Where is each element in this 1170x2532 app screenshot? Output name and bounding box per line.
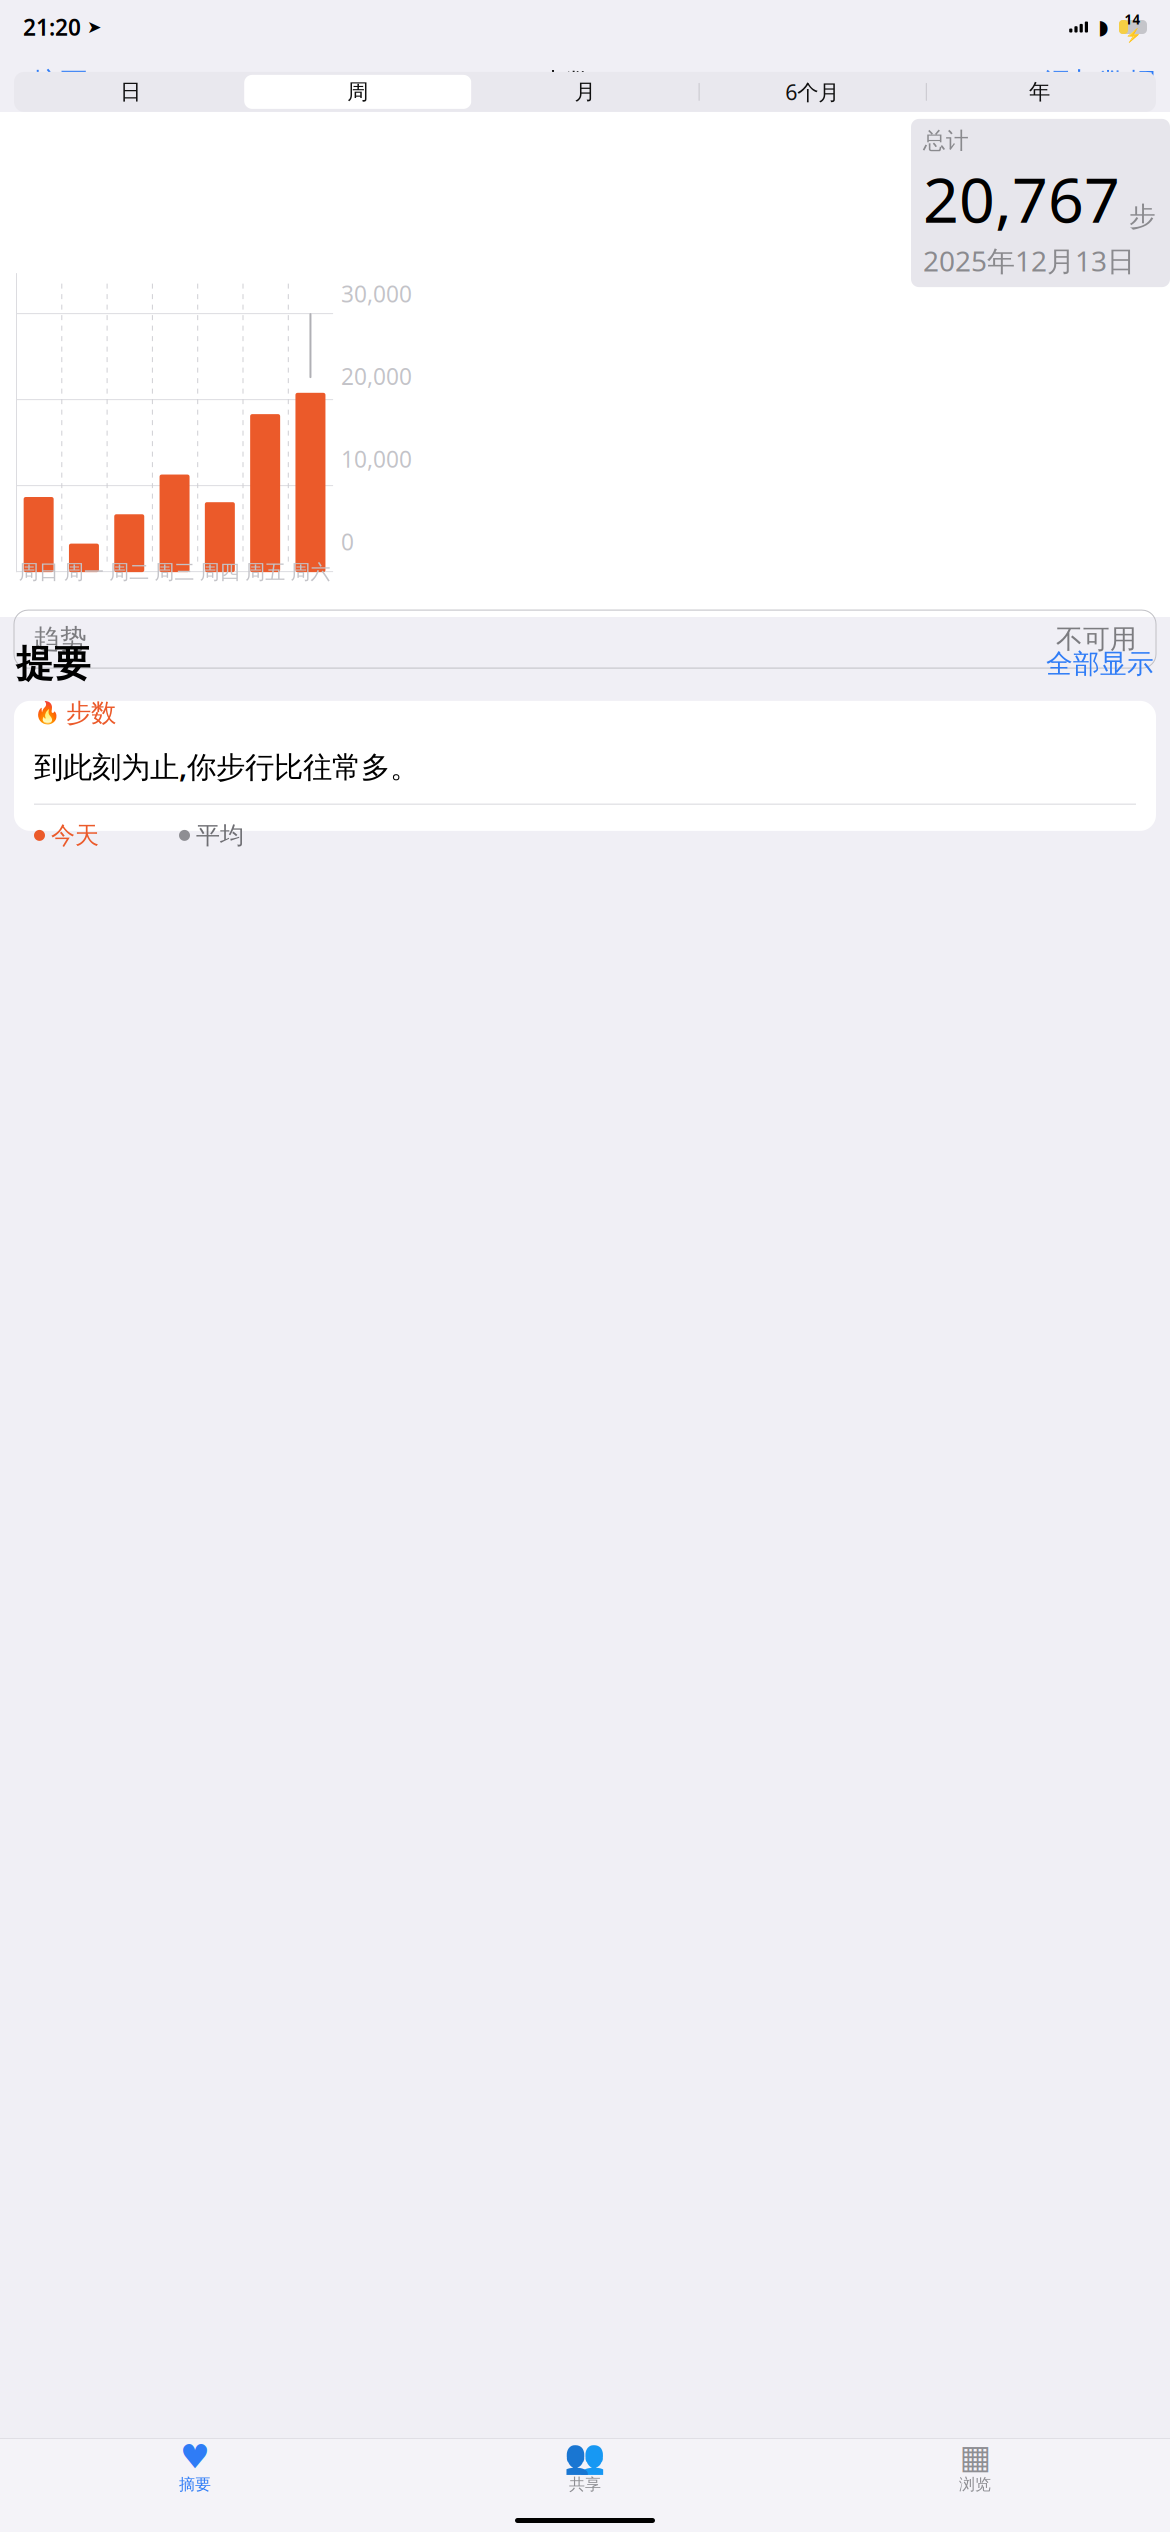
staticText: 周四 <box>200 560 240 584</box>
button[interactable]: 添加数据 <box>1036 62 1156 104</box>
staticText: ▦ <box>959 2438 990 2476</box>
staticText: 周日 <box>19 560 59 584</box>
staticText: 🔥 <box>34 701 61 725</box>
button[interactable]: 月 <box>471 75 699 109</box>
staticText: 今天 <box>51 821 99 850</box>
staticText: 👥 <box>564 2438 606 2476</box>
staticText: 6个月 <box>785 78 839 106</box>
staticText: 总计 <box>923 127 969 155</box>
staticText: ‹ <box>14 53 26 113</box>
staticText: 30,000 <box>341 279 412 309</box>
staticText: 步数 <box>66 698 116 729</box>
staticText: 20,000 <box>341 361 412 391</box>
button[interactable]: 日 <box>17 75 244 109</box>
staticText: ♥ <box>180 2438 210 2476</box>
staticText: 摘要 <box>179 2475 211 2494</box>
staticText: 不可用 <box>1056 623 1137 655</box>
staticText: 周三 <box>154 560 194 584</box>
staticText: 周六 <box>290 560 330 584</box>
staticText: 年 <box>1029 79 1050 105</box>
staticText: 提要 <box>16 641 90 687</box>
staticText: 步数 <box>539 67 593 99</box>
staticText: 2025年12月13日 <box>923 242 1135 279</box>
button[interactable]: 全部显示 <box>1046 648 1154 680</box>
staticText: 周五 <box>245 560 285 584</box>
button[interactable]: 🔥 <box>0 701 1170 831</box>
button[interactable]: 周 <box>244 75 471 109</box>
button[interactable]: 👥 <box>390 2435 780 2494</box>
button[interactable]: ‹ <box>14 49 96 117</box>
staticText: 周 <box>347 79 368 105</box>
button[interactable]: 6个月 <box>699 75 926 109</box>
staticText: 20,767 <box>923 157 1120 240</box>
staticText: ➤ <box>87 17 102 37</box>
button[interactable]: ▦ <box>780 2435 1170 2494</box>
staticText: 周一 <box>64 560 104 584</box>
staticText: 步 <box>1129 200 1156 233</box>
staticText: 浏览 <box>959 2475 991 2494</box>
staticText: 到此刻为止,你步行比往常多。 <box>34 747 419 786</box>
button[interactable]: 趋势 <box>14 610 1156 668</box>
staticText: ◗ <box>1098 16 1109 38</box>
staticText: 21:20 <box>23 12 81 42</box>
staticText: 月 <box>574 79 595 105</box>
staticText: 0 <box>341 527 354 557</box>
staticText: 日 <box>120 79 141 105</box>
staticText: 周二 <box>109 560 149 584</box>
button[interactable]: 年 <box>926 75 1153 109</box>
staticText: 共享 <box>569 2475 601 2494</box>
staticText: 全部显示 <box>1046 648 1154 680</box>
staticText: 14⚡ <box>1124 10 1141 43</box>
staticText: 添加数据 <box>1044 66 1156 100</box>
staticText: 趋势 <box>33 623 87 655</box>
button[interactable]: ♥ <box>0 2435 390 2494</box>
staticText: 平均 <box>196 821 244 850</box>
staticText: 10,000 <box>341 444 412 474</box>
staticText: 摘要 <box>32 66 88 100</box>
